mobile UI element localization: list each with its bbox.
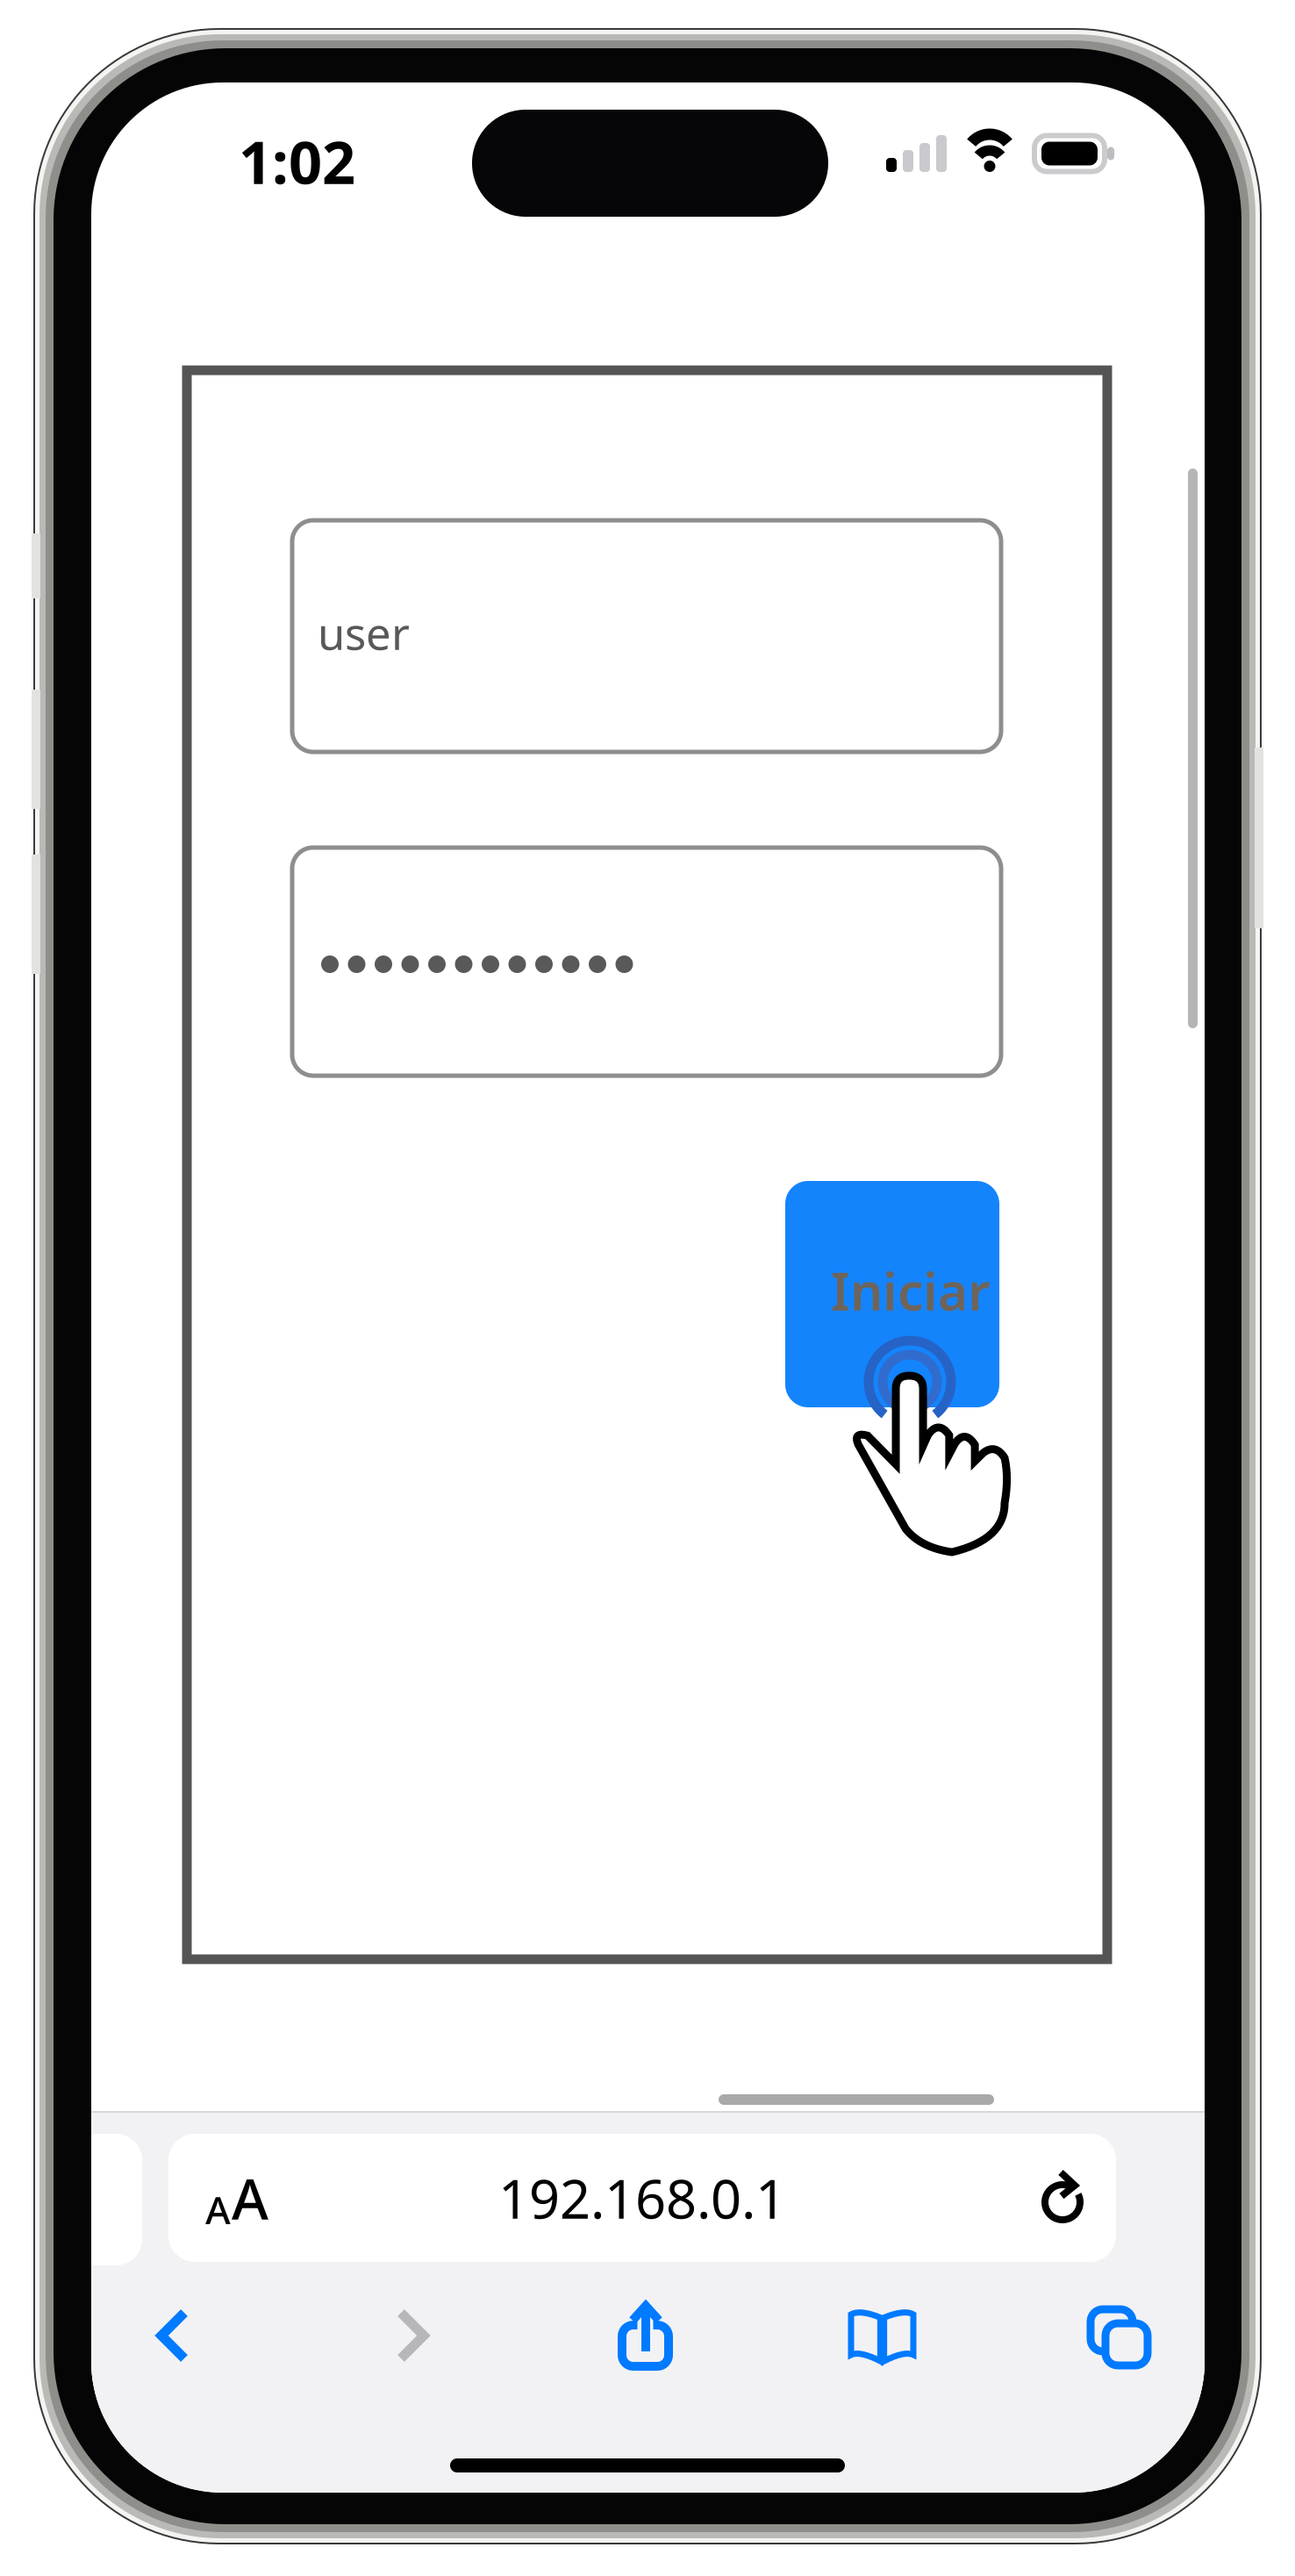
staticText: A <box>232 2161 268 2235</box>
button[interactable]: 192.168.0.1 <box>335 2134 949 2262</box>
button[interactable]: Page settings <box>184 2134 290 2262</box>
button[interactable]: Reload <box>1014 2134 1111 2262</box>
staticText: user <box>318 603 410 662</box>
button[interactable]: Iniciar sesión <box>785 1181 999 1407</box>
staticText: A <box>205 2184 231 2235</box>
button[interactable]: Password <box>292 848 1001 1076</box>
staticText: 192.168.0.1 <box>498 2162 786 2234</box>
staticText: 1:02 <box>239 123 355 200</box>
button[interactable]: Tabs <box>1069 2273 1191 2405</box>
button[interactable]: Forward <box>311 2270 513 2401</box>
staticText: Iniciar sesión <box>831 1256 1163 1325</box>
button[interactable]: Bookmarks <box>821 2271 944 2402</box>
button[interactable]: Back <box>72 2270 274 2401</box>
button[interactable]: user <box>292 520 1001 752</box>
button[interactable]: Share <box>593 2293 698 2425</box>
